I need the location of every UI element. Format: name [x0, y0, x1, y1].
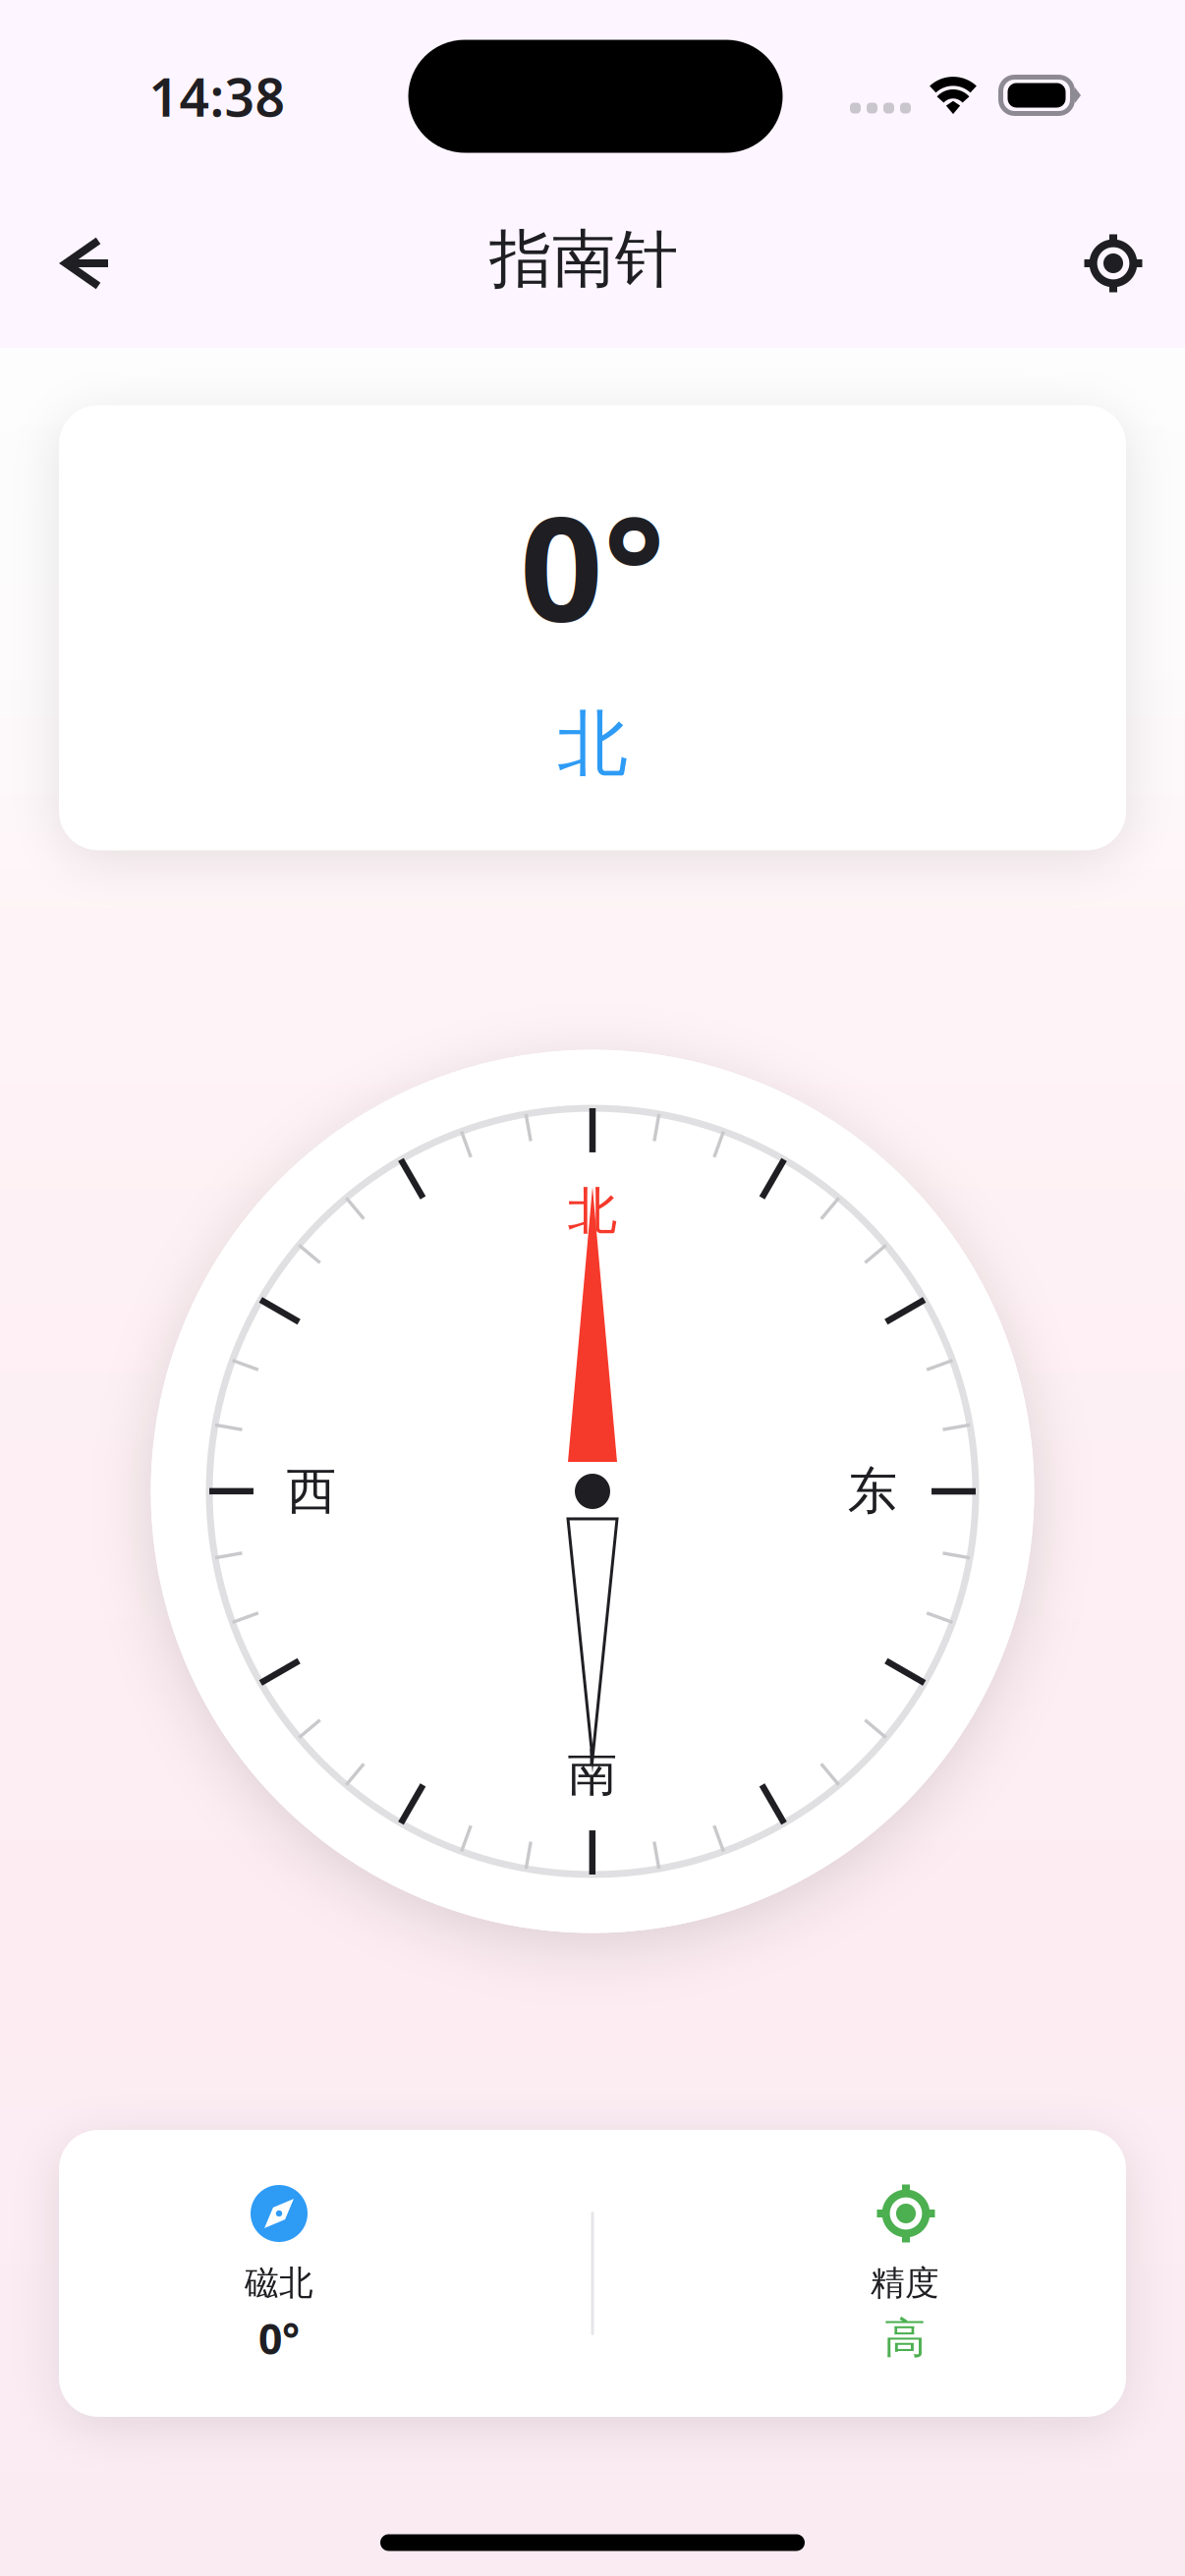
staticText: 精度 — [871, 2262, 939, 2304]
staticText: 0° — [520, 469, 665, 662]
button[interactable]: 返回 — [33, 208, 140, 318]
staticText: 指南针 — [489, 221, 678, 298]
staticText: 西 — [286, 1461, 337, 1522]
staticText: 0° — [258, 2310, 300, 2366]
staticText: 北 — [567, 1181, 618, 1242]
button[interactable]: 定位 — [1055, 205, 1172, 322]
staticText: 14:38 — [149, 62, 285, 131]
staticText: 高 — [884, 2313, 926, 2364]
staticText: 磁北 — [245, 2262, 313, 2304]
staticText: 南 — [567, 1743, 618, 1804]
staticText: 东 — [847, 1461, 898, 1522]
staticText: 北 — [557, 701, 628, 788]
